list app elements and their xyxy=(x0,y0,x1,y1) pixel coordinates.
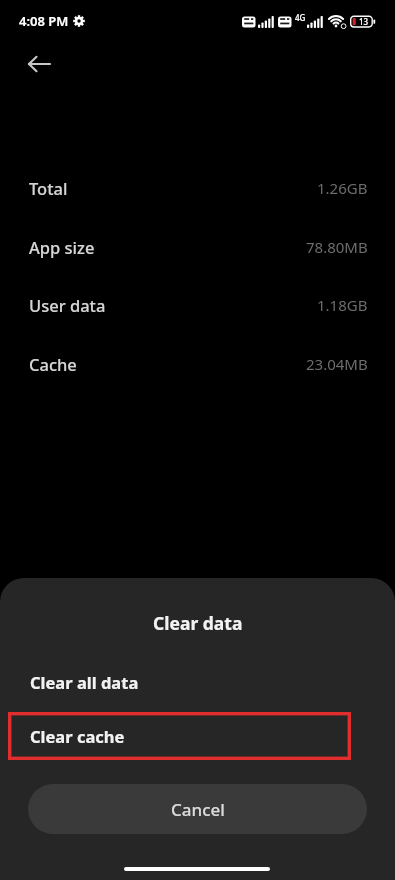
staticText: 78.80MB xyxy=(306,237,368,257)
staticText: Total xyxy=(29,177,68,199)
staticText: 4:08 PM xyxy=(19,12,69,30)
button[interactable]: Cancel xyxy=(28,784,367,834)
button[interactable]: User data xyxy=(0,276,395,334)
button[interactable]: Clear all data xyxy=(0,658,395,706)
staticText: Clear data xyxy=(153,611,243,635)
button[interactable]: App size xyxy=(0,218,395,276)
staticText: 1.26GB xyxy=(317,178,368,198)
staticText: User data xyxy=(29,294,106,316)
staticText: Clear cache xyxy=(30,725,125,747)
staticText: 23.04MB xyxy=(306,354,368,374)
staticText: Clear all data xyxy=(30,671,139,693)
staticText: App size xyxy=(29,236,95,258)
button[interactable]: Clear cache xyxy=(8,712,351,760)
staticText: 4G xyxy=(295,12,306,23)
staticText: 1.18GB xyxy=(317,295,368,315)
button[interactable] xyxy=(17,51,63,77)
staticText: 13 xyxy=(359,16,369,27)
button[interactable]: Cache xyxy=(0,335,395,393)
staticText: Cancel xyxy=(171,798,225,821)
staticText: Cache xyxy=(29,353,77,375)
button[interactable]: Total xyxy=(0,159,395,217)
